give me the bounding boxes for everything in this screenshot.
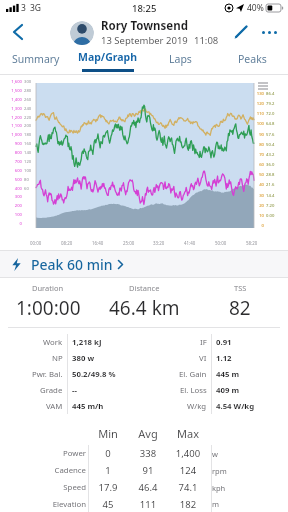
staticText: 120 xyxy=(253,101,264,107)
staticText: 280 xyxy=(24,88,37,94)
button[interactable]: More options xyxy=(256,19,282,45)
staticText: NP xyxy=(52,353,63,364)
staticText: 160 xyxy=(24,141,37,147)
staticText: 90 xyxy=(253,132,264,138)
staticText: 41:40 xyxy=(184,240,196,246)
staticText: 0.00 xyxy=(266,213,284,219)
staticText: 57.6 xyxy=(266,132,284,138)
staticText: 11:08 xyxy=(194,34,219,47)
staticText: 240 xyxy=(24,106,37,112)
staticText: 00:00 xyxy=(30,240,42,246)
button[interactable]: Laps xyxy=(144,48,216,74)
button[interactable]: Map/Graph xyxy=(72,48,144,74)
staticText: Min xyxy=(88,426,128,441)
staticText: 1,300 xyxy=(6,106,22,112)
staticText: Grade xyxy=(40,385,63,396)
staticText xyxy=(24,203,37,209)
staticText: 3G xyxy=(30,2,42,14)
button[interactable]: Peaks xyxy=(216,48,288,74)
staticText: Power xyxy=(0,448,86,459)
staticText: 700 xyxy=(6,159,22,165)
staticText: 100 xyxy=(253,121,264,127)
staticText: 0.91 xyxy=(216,337,232,348)
staticText: 130 xyxy=(253,91,264,97)
button[interactable]: Edit xyxy=(227,19,253,45)
staticText: 64.8 xyxy=(266,121,284,127)
button[interactable]: Summary xyxy=(0,48,72,74)
staticText: 409 m xyxy=(216,385,240,396)
staticText: 124 xyxy=(168,464,208,477)
staticText: Laps xyxy=(169,52,192,66)
staticText: 111 xyxy=(128,498,168,511)
staticText: 36.0 xyxy=(266,162,284,168)
staticText xyxy=(24,212,37,218)
staticText: TSS xyxy=(234,283,247,293)
staticText: 800 xyxy=(6,150,22,156)
staticText: 10 xyxy=(253,213,264,219)
staticText: 16:40 xyxy=(92,240,104,246)
staticText: 0 xyxy=(6,221,22,227)
staticText: 500 xyxy=(6,177,22,183)
staticText: El. Gain xyxy=(179,369,207,380)
staticText: 08:20 xyxy=(61,240,73,246)
staticText xyxy=(24,221,37,227)
staticText: 0 xyxy=(253,223,264,229)
staticText: 1,400 xyxy=(6,97,22,103)
staticText: 1:00:00 xyxy=(16,295,81,321)
staticText: Pwr. Bal. xyxy=(32,369,63,380)
staticText: kph xyxy=(212,483,226,493)
button[interactable]: Peak 60 min xyxy=(0,251,288,277)
staticText: Work xyxy=(43,337,63,348)
staticText: Rory Townsend xyxy=(101,18,188,34)
staticText: 380 w xyxy=(72,353,95,364)
staticText: 600 xyxy=(6,168,22,174)
staticText: rpm xyxy=(212,466,227,476)
staticText xyxy=(24,194,37,200)
staticText: 0 xyxy=(88,447,128,460)
staticText: -- xyxy=(72,385,77,396)
staticText: 120 xyxy=(24,159,37,165)
staticText: Duration xyxy=(32,283,64,293)
staticText: 18:25 xyxy=(132,2,157,15)
staticText: W/kg xyxy=(187,401,207,412)
staticText: El. Loss xyxy=(180,385,207,396)
staticText: 46.4 km xyxy=(109,295,180,321)
staticText: 50.2/49.8 % xyxy=(72,369,116,380)
staticText: 72.0 xyxy=(266,111,284,117)
staticText: 50 xyxy=(253,172,264,178)
staticText: 1 xyxy=(88,464,128,477)
staticText: 200 xyxy=(6,203,22,209)
staticText: 7.20 xyxy=(266,203,284,209)
staticText: 1,500 xyxy=(6,88,22,94)
staticText: 1,000 xyxy=(6,132,22,138)
staticText: 70 xyxy=(253,152,264,158)
staticText: 3 xyxy=(21,2,26,14)
staticText: 43.2 xyxy=(266,152,284,158)
staticText: 1,200 xyxy=(6,115,22,121)
staticText: 20 xyxy=(253,203,264,209)
staticText: 21.6 xyxy=(266,182,284,188)
staticText: VI xyxy=(199,353,207,364)
staticText: 338 xyxy=(128,447,168,460)
staticText: 260 xyxy=(24,97,37,103)
staticText: Avg xyxy=(128,426,168,441)
staticText: 46.4 xyxy=(128,481,168,494)
button[interactable]: Back xyxy=(0,16,34,48)
staticText: m xyxy=(212,499,220,509)
staticText: 200 xyxy=(24,123,37,129)
staticText: IF xyxy=(200,337,207,348)
button[interactable]: Chart options xyxy=(257,80,269,92)
staticText: 60 xyxy=(253,162,264,168)
staticText: 14.4 xyxy=(266,193,284,199)
staticText: 60 xyxy=(24,186,37,192)
staticText: w xyxy=(212,449,218,459)
staticText: 180 xyxy=(24,132,37,138)
staticText: 1,218 kJ xyxy=(72,337,102,348)
staticText: Cadence xyxy=(0,465,86,476)
staticText: 58:20 xyxy=(246,240,258,246)
staticText: 40% xyxy=(247,2,264,14)
staticText: 1,600 xyxy=(6,79,22,85)
staticText: 80 xyxy=(24,177,37,183)
staticText: 50.4 xyxy=(266,142,284,148)
staticText: Map/Graph xyxy=(78,50,138,64)
